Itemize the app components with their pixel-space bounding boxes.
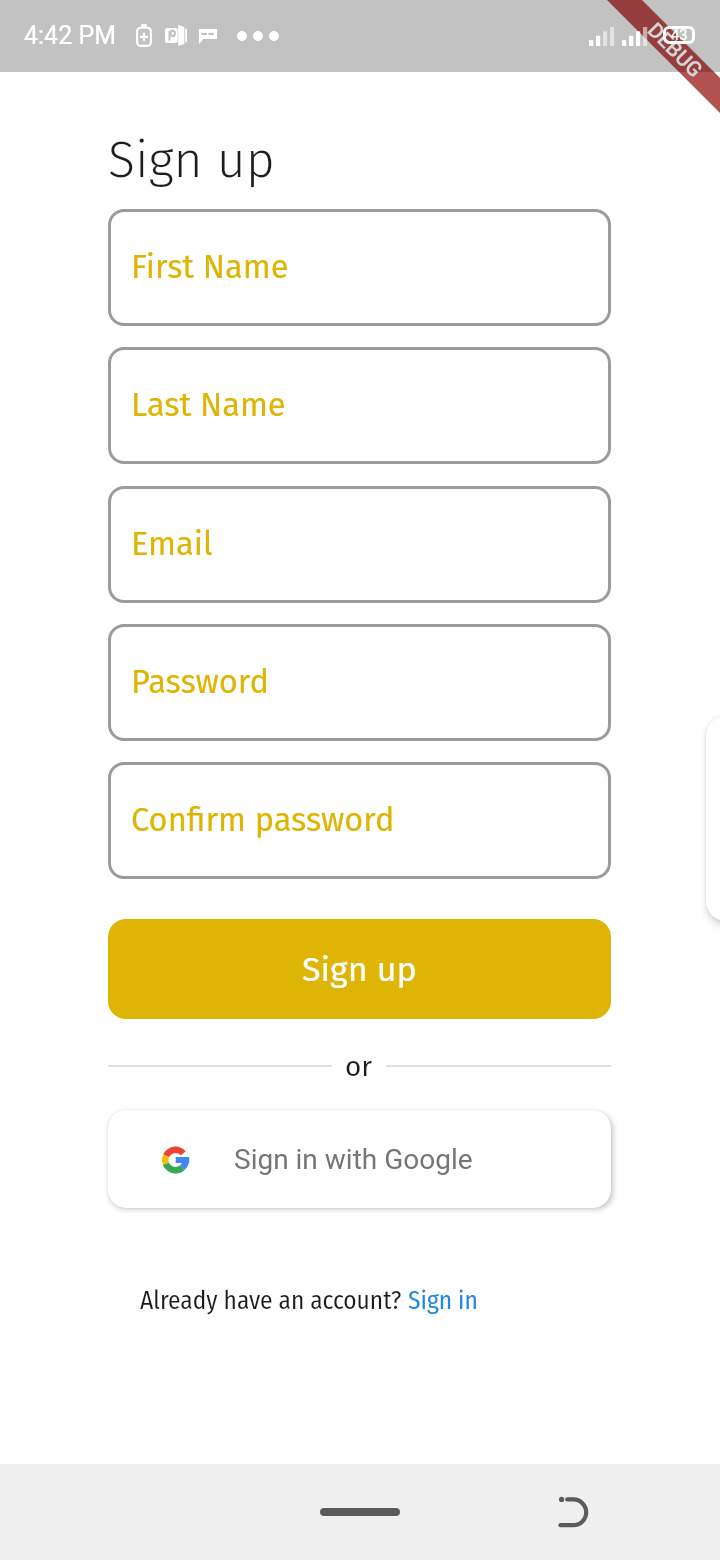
button[interactable]: First Name [108,209,611,326]
button[interactable]: Hide keyboard [552,1488,596,1532]
staticText: Confirm password [131,801,395,840]
staticText: Already have an account? [140,1285,408,1315]
button[interactable]: Confirm password [108,762,611,879]
staticText: Sign up [302,949,417,990]
staticText: 43 [671,27,688,44]
staticText: First Name [131,248,289,287]
staticText: or [345,1050,373,1082]
staticText: DEBUG [642,18,707,83]
button[interactable]: Home [320,1508,400,1516]
staticText: Sign up [108,130,275,190]
staticText: Password [131,663,269,702]
button[interactable]: Sign up [108,919,611,1019]
staticText: Sign in [408,1285,478,1315]
button[interactable]: Email [108,486,611,603]
button[interactable]: Sign in [408,1285,478,1315]
button[interactable]: Password [108,624,611,741]
button[interactable]: Last Name [108,347,611,464]
staticText: 4:42 PM [24,21,117,50]
button[interactable]: Sign in with Google [108,1110,611,1208]
staticText: Email [131,525,213,564]
staticText: Sign in with Google [234,1143,473,1176]
staticText: Last Name [131,386,286,425]
